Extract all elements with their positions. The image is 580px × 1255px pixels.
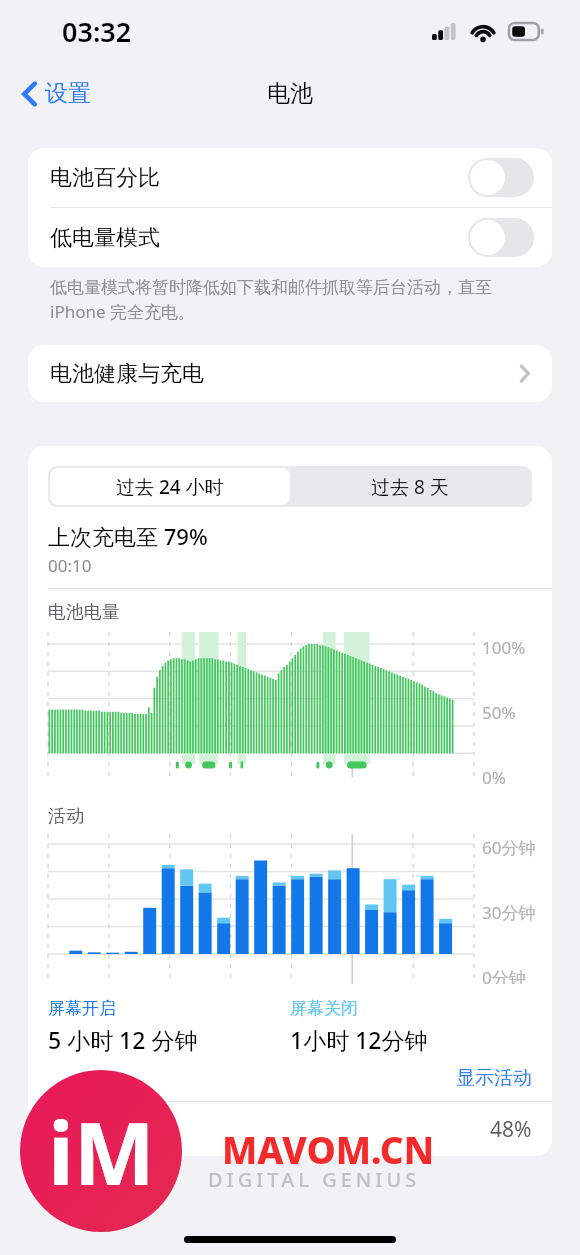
staticText: iM bbox=[48, 1093, 155, 1210]
staticText: 活动 bbox=[48, 805, 84, 828]
staticText: 上次充电至 79% bbox=[48, 521, 208, 551]
button[interactable]: 显示活动 bbox=[456, 1066, 532, 1090]
staticText: 屏幕开启 bbox=[48, 998, 116, 1019]
button[interactable]: 电池百分比 bbox=[28, 148, 552, 207]
staticText: 过去 8 天 bbox=[371, 474, 449, 500]
other: 低电量模式 bbox=[468, 218, 534, 257]
staticText: 1小时 12分钟 bbox=[290, 1024, 428, 1055]
button[interactable]: 过去 8 天 bbox=[290, 468, 530, 505]
staticText: 50% bbox=[482, 701, 516, 724]
staticText: 00:10 bbox=[48, 554, 92, 577]
staticText: 0% bbox=[482, 766, 506, 789]
staticText: 过去 24 小时 bbox=[116, 474, 224, 500]
staticText: 电池百分比 bbox=[50, 164, 160, 192]
staticText: MAVOM.CN bbox=[222, 1124, 435, 1174]
staticText: 0分钟 bbox=[482, 966, 526, 984]
staticText: 后台活动 bbox=[86, 1116, 170, 1142]
other: 电池百分比 bbox=[468, 158, 534, 197]
staticText: 低电量模式 bbox=[50, 224, 160, 252]
button[interactable]: 过去 24 小时 bbox=[50, 468, 290, 505]
staticText: 显示活动 bbox=[456, 1066, 532, 1090]
staticText: 48% bbox=[490, 1115, 532, 1144]
staticText: 电池电量 bbox=[48, 601, 120, 624]
staticText: 03:32 bbox=[62, 13, 132, 50]
staticText: 100% bbox=[482, 636, 526, 659]
staticText: 电池 bbox=[267, 79, 313, 108]
button[interactable]: 低电量模式 bbox=[28, 208, 552, 267]
staticText: 屏幕关闭 bbox=[290, 998, 358, 1019]
button[interactable]: 电池健康与充电 bbox=[28, 345, 552, 402]
staticText: 5 小时 12 分钟 bbox=[48, 1024, 198, 1055]
staticText: 30分钟 bbox=[482, 901, 536, 924]
staticText: 电池健康与充电 bbox=[50, 360, 204, 388]
staticText: 60分钟 bbox=[482, 836, 536, 859]
staticText: 设置 bbox=[45, 79, 91, 108]
staticText: 低电量模式将暂时降低如下载和邮件抓取等后台活动，直至 iPhone 完全充电。 bbox=[50, 277, 492, 323]
staticText: DIGITAL GENIUS bbox=[208, 1166, 421, 1193]
button[interactable]: 设置 bbox=[14, 73, 99, 114]
